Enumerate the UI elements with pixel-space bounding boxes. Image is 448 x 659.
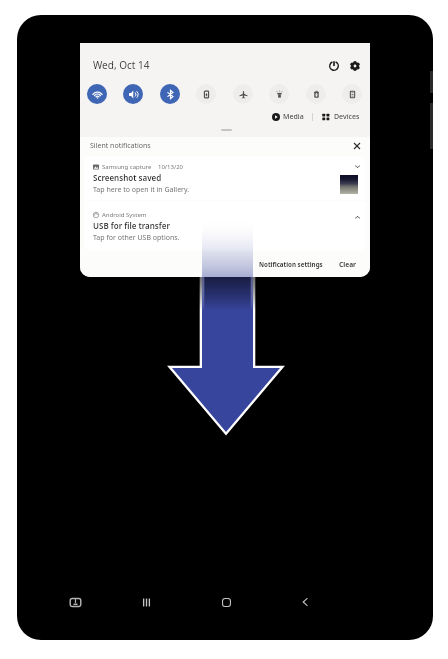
button[interactable]: Airplane mode bbox=[233, 84, 253, 104]
staticText: Notification settings bbox=[259, 260, 323, 268]
staticText: Wed, Oct 14 bbox=[93, 58, 150, 72]
button[interactable]: Hide keyboard bbox=[62, 589, 88, 615]
button[interactable]: Media bbox=[272, 112, 304, 122]
button[interactable]: Expand bbox=[352, 161, 362, 171]
button[interactable]: Devices bbox=[322, 112, 360, 122]
button[interactable]: Samsung capture bbox=[84, 156, 366, 200]
staticText: Screenshot saved bbox=[93, 172, 162, 183]
button[interactable]: Collapse bbox=[352, 212, 362, 222]
button[interactable]: Notification settings bbox=[255, 257, 327, 271]
staticText: 10/13/20 bbox=[158, 163, 184, 171]
button[interactable]: Back bbox=[292, 589, 318, 615]
button[interactable]: Wi-Fi bbox=[87, 84, 107, 104]
staticText: USB for file transfer bbox=[93, 220, 170, 231]
staticText: Clear bbox=[339, 260, 357, 269]
staticText: Silent notifications bbox=[90, 141, 151, 151]
staticText: Media bbox=[283, 112, 304, 122]
button[interactable]: Settings bbox=[347, 58, 363, 74]
button[interactable]: Bluetooth bbox=[160, 84, 180, 104]
staticText: Devices bbox=[334, 112, 360, 122]
staticText: Tap here to open it in Gallery. bbox=[93, 185, 190, 195]
button[interactable]: Android System bbox=[84, 201, 366, 251]
button[interactable]: Power bbox=[326, 58, 342, 74]
button[interactable]: Power saving bbox=[306, 84, 326, 104]
button[interactable]: Home bbox=[213, 589, 239, 615]
button[interactable]: Sound bbox=[123, 84, 143, 104]
button[interactable]: Flashlight bbox=[269, 84, 289, 104]
button[interactable]: Clear bbox=[335, 257, 361, 272]
button[interactable]: Do not disturb bbox=[342, 84, 362, 104]
staticText: Tap for other USB options. bbox=[93, 233, 180, 243]
button[interactable]: Auto rotate bbox=[196, 84, 216, 104]
button[interactable]: Recents bbox=[133, 589, 159, 615]
staticText: Android System bbox=[102, 211, 147, 219]
button[interactable]: Dismiss silent notifications bbox=[350, 139, 363, 152]
staticText: Samsung capture bbox=[102, 163, 152, 171]
